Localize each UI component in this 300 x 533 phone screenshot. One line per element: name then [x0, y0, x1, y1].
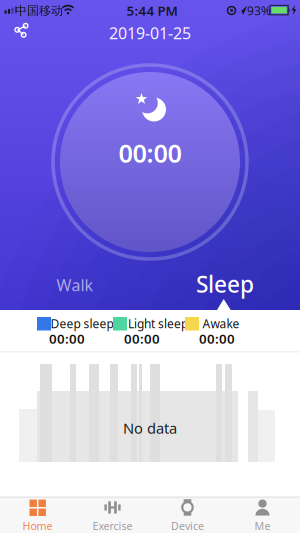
staticText: Me: [254, 519, 270, 533]
staticText: Exercise: [92, 519, 132, 533]
staticText: 5:44 PM: [126, 2, 177, 19]
staticText: 00:00: [124, 330, 160, 347]
button[interactable]: Home: [0, 498, 75, 533]
staticText: Home: [22, 519, 52, 533]
staticText: Walk: [56, 274, 93, 296]
staticText: 00:00: [118, 136, 181, 170]
button[interactable]: Me: [225, 498, 300, 533]
button[interactable]: Share: [0, 0, 44, 44]
staticText: Light sleep: [128, 315, 188, 331]
staticText: No data: [123, 418, 177, 438]
button[interactable]: Device: [150, 498, 225, 533]
staticText: Awake: [202, 315, 239, 331]
staticText: Deep sleep: [50, 315, 113, 331]
button[interactable]: Sleep: [165, 267, 285, 301]
staticText: 2019-01-25: [109, 22, 191, 44]
staticText: 00:00: [49, 330, 85, 347]
staticText: 93%: [247, 3, 271, 19]
staticText: Sleep: [196, 269, 254, 299]
staticText: Device: [171, 519, 204, 533]
button[interactable]: Walk: [15, 268, 135, 302]
staticText: 中国移动: [15, 3, 63, 18]
staticText: 00:00: [199, 330, 235, 347]
button[interactable]: Exercise: [75, 498, 150, 533]
